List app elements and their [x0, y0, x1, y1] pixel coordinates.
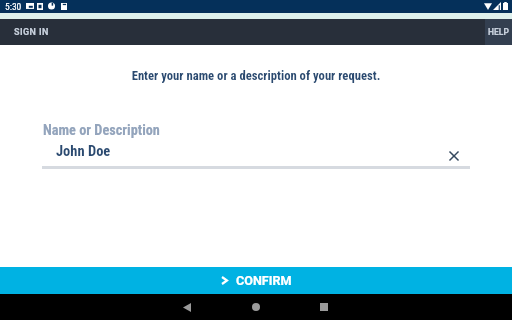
button[interactable]: Back [178, 294, 196, 320]
staticText: Enter your name or a description of your… [0, 68, 512, 83]
staticText: John Doe [56, 143, 111, 160]
staticText: SIGN IN [14, 27, 49, 38]
button[interactable]: Clear text [444, 146, 463, 165]
staticText: Name or Description [43, 122, 160, 139]
button[interactable]: HELP [485, 19, 512, 45]
button[interactable]: Recent apps [315, 294, 333, 320]
button[interactable]: CONFIRM [0, 267, 512, 294]
button[interactable]: Home [247, 294, 265, 320]
staticText: CONFIRM [236, 273, 292, 288]
staticText: 5:30 [5, 1, 22, 12]
staticText: HELP [488, 27, 509, 37]
